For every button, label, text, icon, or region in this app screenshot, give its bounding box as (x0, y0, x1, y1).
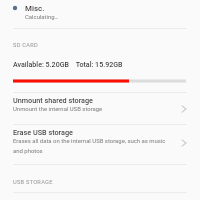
staticText: Erases all data on the internal USB stor… (13, 137, 166, 154)
staticText: Available: 5.20GB Total: 15.92GB (13, 60, 123, 68)
staticText: Calculating… (25, 13, 59, 20)
other: Misc. category colour (9, 2, 21, 14)
button[interactable]: Unmount shared storage (0, 92, 200, 124)
other: Open (179, 104, 189, 114)
staticText: SD CARD (13, 42, 38, 49)
staticText: USB STORAGE (13, 179, 53, 186)
staticText: Unmount the internal USB storage (13, 105, 103, 112)
staticText: Misc. (25, 4, 45, 13)
staticText: Erase USB storage (13, 128, 73, 136)
other: Open (179, 138, 189, 148)
button[interactable]: Erase USB storage (0, 126, 200, 164)
staticText: Unmount shared storage (13, 96, 94, 104)
button[interactable]: Misc. category colour (0, 0, 200, 28)
